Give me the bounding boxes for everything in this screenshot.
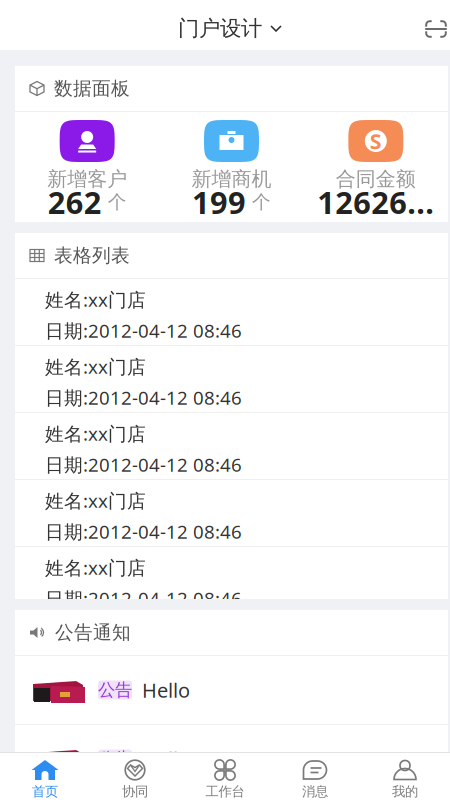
- staticText: 公告通知: [55, 621, 131, 644]
- staticText: 姓名:xx门店: [45, 421, 146, 446]
- staticText: 199: [192, 182, 246, 222]
- staticText: 公告: [98, 748, 132, 770]
- staticText: 日期:2012-04-12 08:46: [45, 385, 242, 410]
- button[interactable]: 工作台: [180, 752, 270, 800]
- staticText: 姓名:xx门店: [45, 555, 146, 580]
- staticText: 姓名:xx门店: [45, 488, 146, 513]
- staticText: 数据面板: [54, 77, 130, 100]
- staticText: Hello: [142, 677, 190, 703]
- staticText: 262: [48, 182, 102, 222]
- staticText: 消息: [302, 783, 328, 800]
- button[interactable]: 首页: [0, 752, 90, 800]
- staticText: Hello: [142, 746, 190, 772]
- staticText: 日期:2012-04-12 08:46: [45, 653, 242, 678]
- button[interactable]: 姓名:xx门店: [15, 346, 448, 412]
- button[interactable]: 公告: [15, 725, 448, 793]
- staticText: 我的: [392, 783, 418, 800]
- staticText: 12626...: [317, 182, 434, 222]
- staticText: 工作台: [205, 783, 244, 800]
- staticText: 日期:2012-04-12 08:46: [45, 318, 242, 343]
- button[interactable]: 门户设计: [168, 5, 282, 45]
- staticText: 协同: [122, 783, 148, 800]
- staticText: 公告: [98, 679, 132, 701]
- staticText: 首页: [32, 783, 58, 800]
- staticText: 合同金额: [336, 167, 416, 191]
- staticText: 姓名:xx门店: [45, 622, 146, 647]
- staticText: 姓名:xx门店: [45, 354, 146, 379]
- button[interactable]: 公告: [15, 794, 448, 800]
- button[interactable]: 姓名:xx门店: [15, 413, 448, 479]
- staticText: 个: [252, 190, 271, 213]
- button[interactable]: 我的: [360, 752, 450, 800]
- button[interactable]: 公告: [15, 656, 448, 724]
- staticText: 新增商机: [191, 167, 271, 191]
- staticText: 日期:2012-04-12 08:46: [45, 586, 242, 611]
- staticText: 门户设计: [178, 15, 262, 42]
- staticText: 日期:2012-04-12 08:46: [45, 519, 242, 544]
- staticText: 个: [108, 190, 127, 213]
- button[interactable]: 姓名:xx门店: [15, 614, 448, 680]
- button[interactable]: 姓名:xx门店: [15, 279, 448, 345]
- button[interactable]: 姓名:xx门店: [15, 547, 448, 613]
- button[interactable]: 姓名:xx门店: [15, 480, 448, 546]
- staticText: S: [370, 127, 382, 155]
- staticText: 新增客户: [47, 167, 127, 191]
- button[interactable]: 消息: [270, 752, 360, 800]
- staticText: 姓名:xx门店: [45, 287, 146, 312]
- staticText: 日期:2012-04-12 08:46: [45, 452, 242, 477]
- button[interactable]: Scan: [407, 5, 450, 45]
- button[interactable]: 协同: [90, 752, 180, 800]
- staticText: 表格列表: [54, 244, 130, 267]
